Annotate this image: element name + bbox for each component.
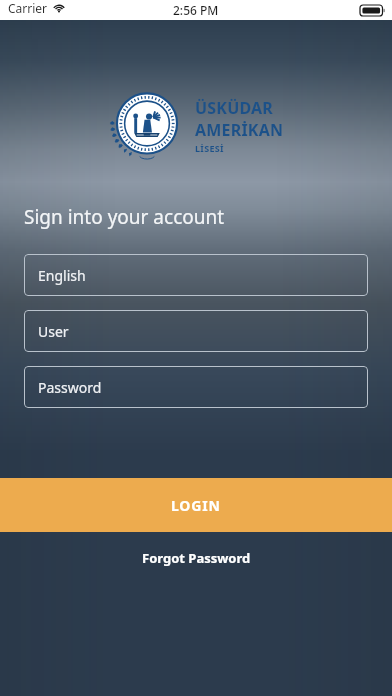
staticText: Password bbox=[38, 378, 102, 397]
button[interactable]: English bbox=[24, 254, 368, 296]
button[interactable]: Forgot Password bbox=[0, 532, 392, 584]
staticText: ÜSKÜDAR bbox=[195, 97, 273, 119]
button[interactable]: Password bbox=[24, 366, 368, 408]
staticText: English bbox=[38, 266, 86, 285]
staticText: User bbox=[38, 322, 69, 341]
staticText: Forgot Password bbox=[142, 549, 251, 567]
staticText: 2:56 PM bbox=[173, 2, 219, 18]
button[interactable]: User bbox=[24, 310, 368, 352]
staticText: LİSESİ bbox=[195, 142, 224, 154]
staticText: Sign into your account bbox=[24, 204, 225, 230]
staticText: Carrier bbox=[8, 0, 48, 16]
staticText: AMERİKAN bbox=[195, 119, 284, 141]
button[interactable]: LOGIN bbox=[0, 478, 392, 532]
staticText: LOGIN bbox=[171, 496, 221, 515]
